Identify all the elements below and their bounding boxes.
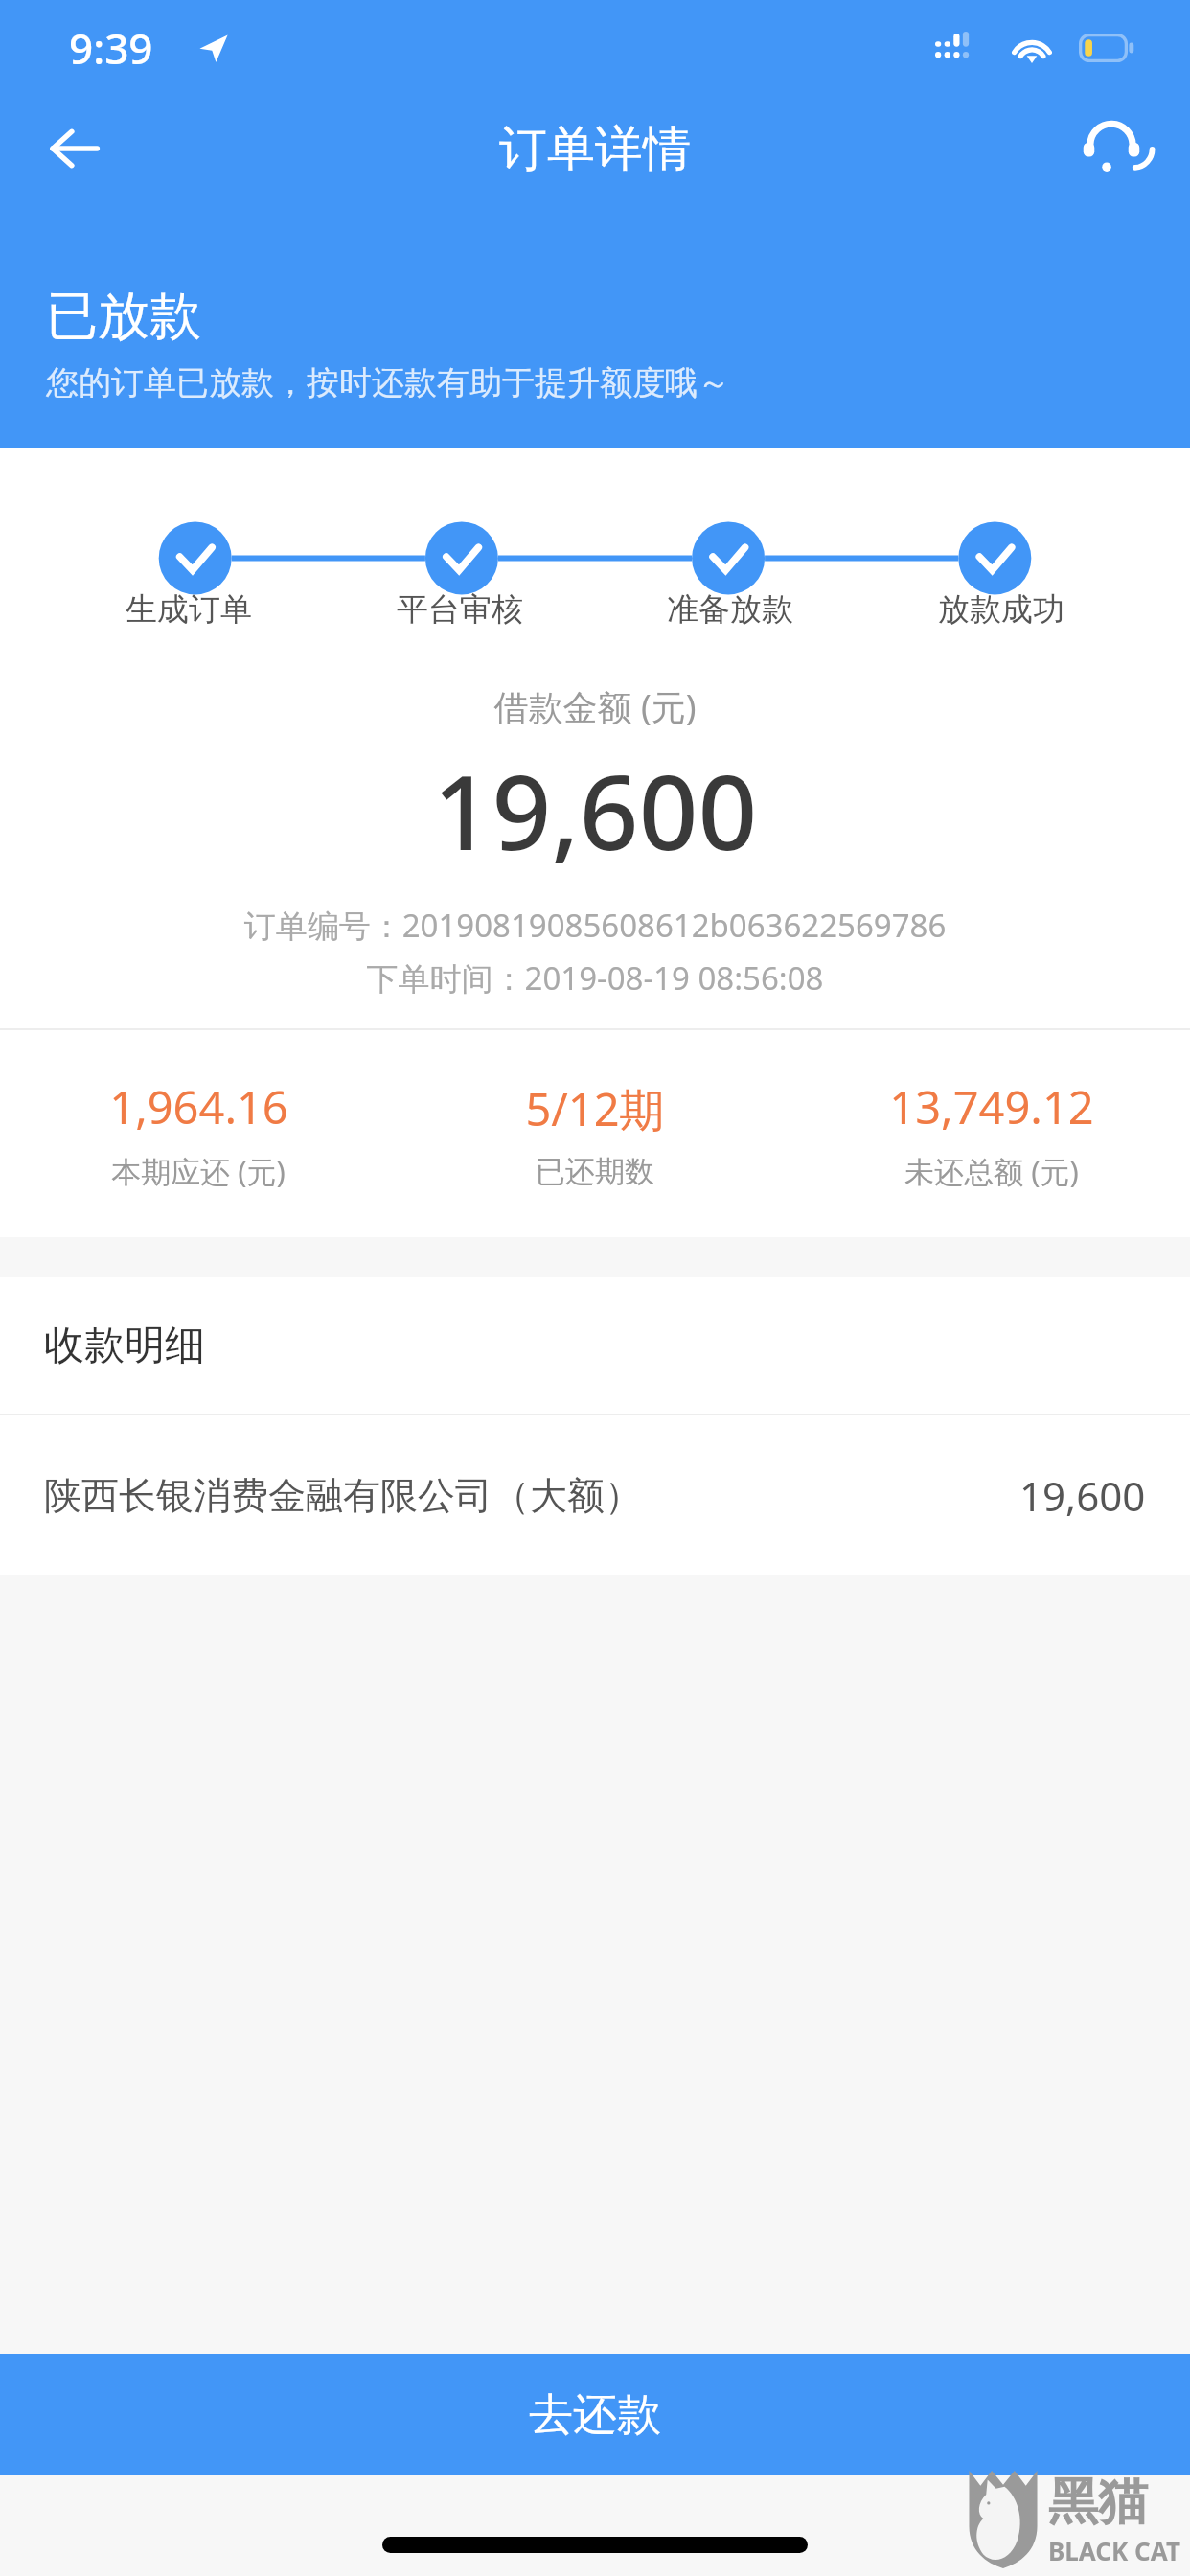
staticText: 平台审核 (397, 589, 523, 630)
staticText: 订单编号：20190819085608612b063622569786 (0, 904, 1190, 947)
button[interactable]: 陕西长银消费金融有限公司（大额） (0, 1415, 1190, 1575)
staticText: 9:39 (69, 19, 153, 77)
staticText: 未还总额 (元) (904, 1151, 1079, 1191)
staticText: 19,600 (1019, 1468, 1146, 1523)
staticText: 19,600 (0, 740, 1190, 881)
staticText: 生成订单 (126, 589, 252, 630)
staticText: 已放款 (46, 284, 201, 349)
staticText: 去还款 (529, 2387, 661, 2443)
staticText: 1,964.16 (109, 1076, 288, 1138)
staticText: 陕西长银消费金融有限公司（大额） (44, 1472, 642, 1519)
staticText: 本期应还 (元) (111, 1151, 286, 1191)
staticText: BLACK CAT (1048, 2534, 1180, 2567)
staticText: 准备放款 (667, 589, 793, 630)
staticText: 13,749.12 (889, 1076, 1094, 1138)
button[interactable]: 去还款 (0, 2354, 1190, 2475)
button[interactable]: Back (29, 103, 121, 195)
staticText: 订单详情 (499, 119, 691, 179)
staticText: 您的订单已放款，按时还款有助于提升额度哦～ (46, 362, 730, 403)
staticText: 收款明细 (44, 1321, 205, 1371)
staticText: 已还期数 (536, 1153, 654, 1190)
staticText: 借款金额 (元) (0, 683, 1190, 730)
staticText: 5/12期 (525, 1078, 665, 1139)
staticText: 放款成功 (938, 589, 1064, 630)
staticText: 下单时间：2019-08-19 08:56:08 (0, 956, 1190, 1000)
button[interactable]: Customer service (1064, 101, 1159, 196)
staticText: 黑猫 (1048, 2471, 1148, 2534)
